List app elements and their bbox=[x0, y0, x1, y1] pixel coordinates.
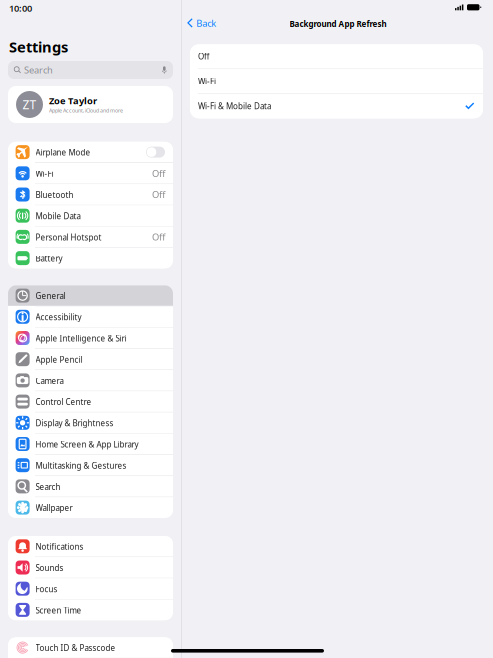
button[interactable]: Screen Time bbox=[8, 600, 173, 620]
staticText: Focus bbox=[35, 584, 57, 594]
button[interactable]: Touch ID & Passcode bbox=[8, 637, 173, 658]
button[interactable]: Notifications bbox=[8, 536, 173, 557]
staticText: Off bbox=[152, 188, 165, 201]
button[interactable]: Mobile Data bbox=[8, 205, 173, 226]
button[interactable]: Search bbox=[8, 476, 173, 497]
button[interactable]: Wallpaper bbox=[8, 497, 173, 518]
button[interactable]: Personal Hotspot bbox=[8, 227, 173, 247]
staticText: Control Centre bbox=[35, 397, 91, 407]
staticText: Multitasking & Gestures bbox=[35, 460, 126, 471]
button[interactable]: Accessibility bbox=[8, 306, 173, 327]
button[interactable]: Focus bbox=[8, 578, 173, 599]
button[interactable]: Multitasking & Gestures bbox=[8, 455, 173, 475]
staticText: Wi-Fi bbox=[35, 168, 53, 179]
button[interactable]: ZT bbox=[8, 86, 173, 123]
staticText: Battery bbox=[35, 253, 62, 264]
staticText: Notifications bbox=[35, 541, 83, 552]
staticText: Back bbox=[196, 17, 216, 29]
staticText: Apple Account, iCloud and more bbox=[49, 107, 123, 114]
staticText: Screen Time bbox=[35, 605, 81, 616]
button[interactable]: Sounds bbox=[8, 557, 173, 578]
staticText: Touch ID & Passcode bbox=[35, 643, 115, 653]
staticText: Sounds bbox=[35, 563, 63, 573]
staticText: Background App Refresh bbox=[289, 18, 386, 29]
staticText: Wi-Fi bbox=[198, 76, 216, 87]
staticText: Airplane Mode bbox=[35, 147, 90, 158]
staticText: Personal Hotspot bbox=[35, 232, 101, 243]
staticText: Settings bbox=[9, 37, 68, 56]
button[interactable]: Airplane Mode bbox=[8, 142, 173, 162]
staticText: Search bbox=[24, 64, 53, 76]
staticText: Wi-Fi & Mobile Data bbox=[198, 101, 271, 111]
button[interactable]: Display & Brightness bbox=[8, 412, 173, 433]
button[interactable]: Control Centre bbox=[8, 391, 173, 412]
staticText: General bbox=[35, 291, 65, 301]
staticText: Wallpaper bbox=[35, 503, 72, 513]
button[interactable]: Back bbox=[186, 15, 222, 31]
button[interactable]: Apple Pencil bbox=[8, 349, 173, 369]
staticText: Zoe Taylor bbox=[49, 94, 97, 107]
staticText: Off bbox=[198, 51, 210, 62]
staticText: Off bbox=[152, 167, 165, 179]
staticText: Accessibility bbox=[35, 312, 81, 322]
staticText: Bluetooth bbox=[35, 190, 73, 200]
button[interactable]: Search bbox=[8, 61, 173, 79]
button[interactable]: Battery bbox=[8, 248, 173, 268]
button[interactable]: Off bbox=[190, 44, 483, 69]
button[interactable]: Home Screen & App Library bbox=[8, 434, 173, 454]
staticText: Mobile Data bbox=[35, 211, 80, 221]
staticText: Display & Brightness bbox=[35, 418, 113, 428]
button[interactable]: Wi-Fi bbox=[8, 163, 173, 184]
staticText: Search bbox=[35, 481, 60, 492]
button[interactable]: Wi-Fi & Mobile Data bbox=[190, 94, 483, 118]
staticText: Off bbox=[152, 231, 165, 243]
staticText: 10:00 bbox=[9, 2, 32, 14]
staticText: ZT bbox=[22, 96, 36, 112]
staticText: Apple Pencil bbox=[35, 354, 82, 365]
button[interactable]: Wi-Fi bbox=[190, 69, 483, 93]
button[interactable]: Bluetooth bbox=[8, 184, 173, 205]
button[interactable]: Camera bbox=[8, 370, 173, 391]
button[interactable]: General bbox=[8, 285, 173, 306]
staticText: Apple Intelligence & Siri bbox=[35, 333, 126, 344]
staticText: Camera bbox=[35, 375, 63, 386]
staticText: Home Screen & App Library bbox=[35, 439, 138, 450]
button[interactable]: Apple Intelligence & Siri bbox=[8, 328, 173, 348]
